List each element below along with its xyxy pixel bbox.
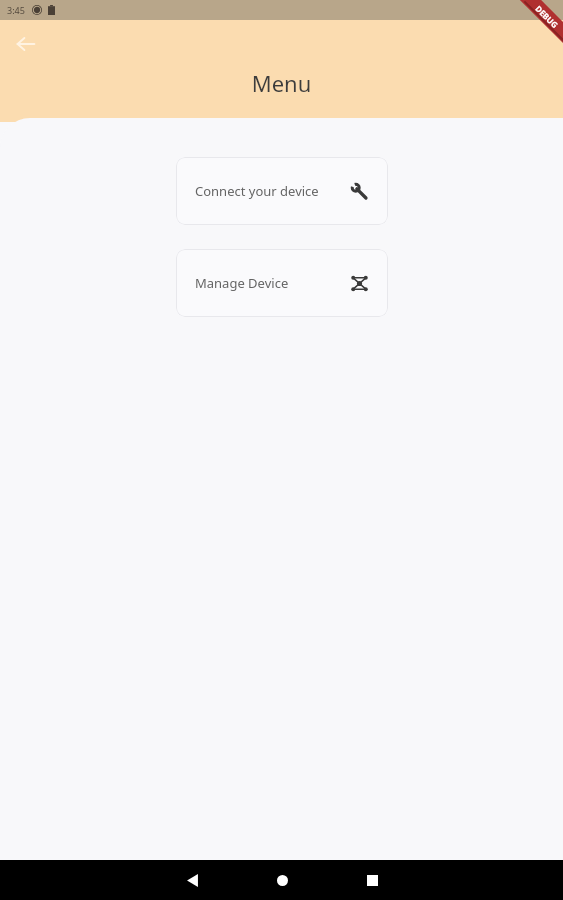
- other: Debug banner: [499, 0, 563, 64]
- staticText: DEBUG: [533, 3, 561, 30]
- button[interactable]: Manage Device: [176, 249, 388, 317]
- staticText: Menu: [0, 68, 563, 98]
- staticText: Connect your device: [195, 182, 319, 200]
- button[interactable]: Home: [254, 860, 310, 900]
- button[interactable]: Connect your device: [176, 157, 388, 225]
- staticText: 3:45: [7, 4, 25, 16]
- button[interactable]: Back: [164, 860, 220, 900]
- staticText: Manage Device: [195, 274, 289, 292]
- button[interactable]: Back: [4, 22, 48, 66]
- button[interactable]: Recent apps: [344, 860, 400, 900]
